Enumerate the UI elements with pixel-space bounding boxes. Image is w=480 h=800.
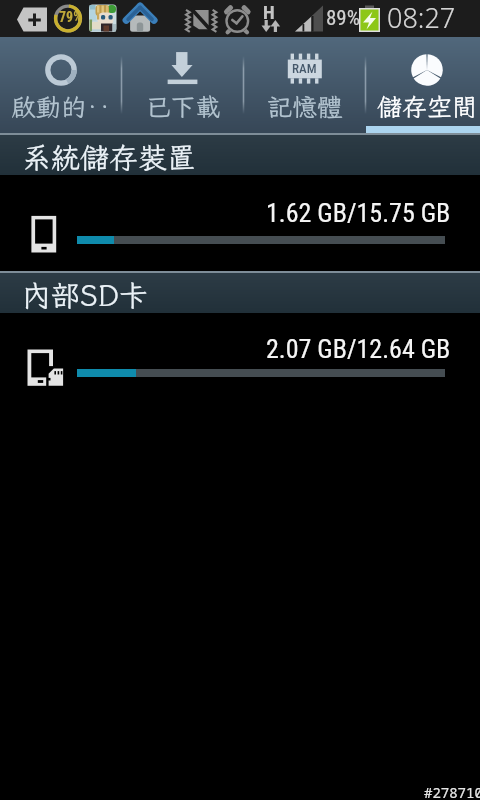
button[interactable]: Memory <box>244 37 366 134</box>
staticText: 已下載 <box>122 90 244 123</box>
button[interactable]: Downloaded <box>122 37 244 134</box>
staticText: H <box>263 1 275 23</box>
staticText: 內部SD卡 <box>22 276 149 314</box>
staticText: 08:27 <box>387 0 456 36</box>
button[interactable]: 1.62 GB/15.75 GB <box>0 176 480 270</box>
staticText: 系統儲存裝置 <box>22 138 197 176</box>
staticText: RAM <box>292 61 317 76</box>
button[interactable]: Storage <box>366 37 480 134</box>
staticText: 2.07 GB/12.64 GB <box>266 334 451 364</box>
staticText: 儲存空間 <box>366 90 480 123</box>
staticText: 79% <box>59 9 83 25</box>
button[interactable]: 2.07 GB/12.64 GB <box>0 312 480 400</box>
staticText: 89% <box>326 6 361 31</box>
staticText: 1.62 GB/15.75 GB <box>266 198 451 228</box>
button[interactable]: Running applications <box>0 37 122 134</box>
staticText: #278710 <box>424 783 480 800</box>
staticText: 記憶體 <box>244 90 366 123</box>
staticText: 啟動的‥ <box>0 90 122 123</box>
